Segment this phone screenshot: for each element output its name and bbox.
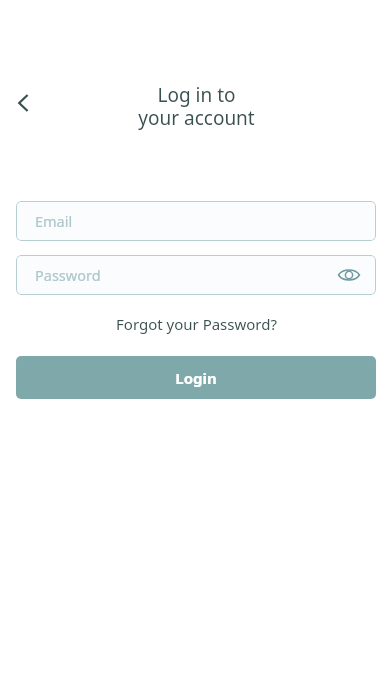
button[interactable]: Back xyxy=(6,85,42,121)
button[interactable]: Forgot your Password? xyxy=(16,314,376,334)
button[interactable]: Login xyxy=(16,356,376,399)
button[interactable]: Show password xyxy=(335,261,363,289)
staticText: Email xyxy=(35,211,73,231)
staticText: Log in to your account xyxy=(138,82,255,131)
staticText: Password xyxy=(35,265,101,285)
staticText: Forgot your Password? xyxy=(116,314,277,334)
staticText: Login xyxy=(175,368,217,388)
button[interactable]: Password xyxy=(16,255,376,295)
button[interactable]: Email xyxy=(16,201,376,241)
